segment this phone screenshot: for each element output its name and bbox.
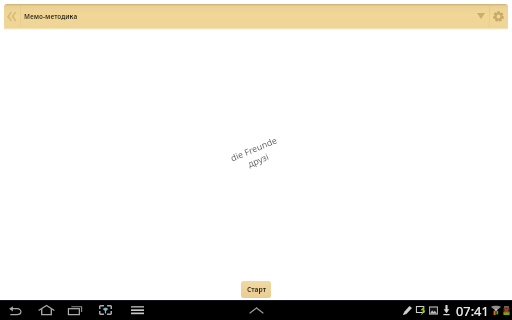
staticText: 07:41 <box>456 302 489 319</box>
other: Screen cast <box>416 300 426 320</box>
button[interactable]: Recent apps <box>62 300 88 320</box>
staticText: Старт <box>247 285 266 294</box>
button[interactable]: Back <box>2 300 28 320</box>
staticText: Мемо-методика <box>24 12 78 21</box>
button[interactable]: Menu <box>124 300 150 320</box>
button[interactable]: More options <box>470 4 492 28</box>
staticText: друзі <box>246 151 271 170</box>
button[interactable]: Старт <box>241 281 271 298</box>
button[interactable]: Home <box>33 300 59 320</box>
other: Screenshot saved <box>429 300 438 320</box>
button[interactable]: Settings <box>490 4 507 28</box>
other: Stylus <box>403 300 412 320</box>
staticText: die Freunde <box>228 134 279 164</box>
other: Downloads <box>443 300 450 320</box>
button[interactable]: Мемо-методика <box>21 4 85 28</box>
other: Wi-Fi <box>491 300 501 320</box>
button[interactable]: Back <box>4 4 22 28</box>
button[interactable]: Expand <box>243 300 269 320</box>
other: Battery <box>503 300 510 320</box>
button[interactable]: Screenshot <box>92 300 118 320</box>
